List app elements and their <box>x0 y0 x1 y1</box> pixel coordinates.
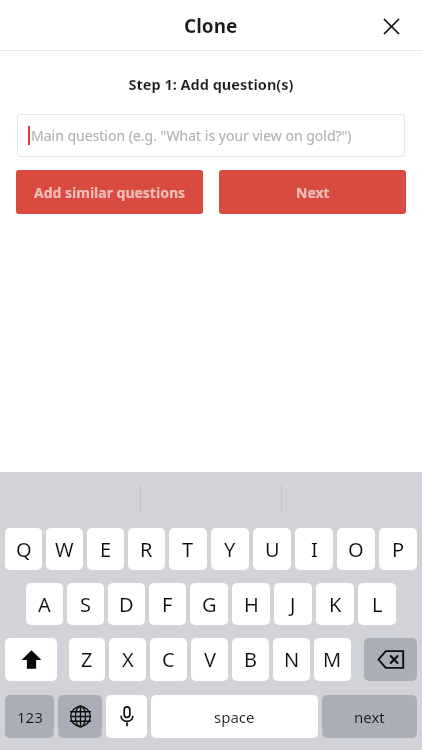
button[interactable]: F <box>149 583 186 625</box>
staticText: Step 1: Add question(s) <box>0 74 422 94</box>
button[interactable]: R <box>128 528 165 570</box>
button[interactable]: C <box>150 638 187 681</box>
staticText: U <box>265 536 280 563</box>
button[interactable]: Change keyboard language <box>58 695 102 738</box>
staticText: 123 <box>17 707 43 727</box>
staticText: P <box>392 536 405 563</box>
staticText: J <box>290 591 296 618</box>
button[interactable]: V <box>191 638 228 681</box>
staticText: B <box>244 646 257 673</box>
staticText: Next <box>296 183 330 202</box>
button[interactable]: U <box>253 528 291 570</box>
staticText: A <box>38 591 51 618</box>
button[interactable]: B <box>232 638 269 681</box>
button[interactable]: W <box>46 528 83 570</box>
button[interactable]: G <box>190 583 228 625</box>
staticText: K <box>329 591 342 618</box>
staticText: Z <box>81 646 93 673</box>
staticText: D <box>119 591 134 618</box>
button[interactable]: Voice input <box>106 695 147 738</box>
button[interactable]: D <box>108 583 145 625</box>
staticText: F <box>162 591 173 618</box>
button[interactable]: Backspace <box>364 638 417 681</box>
staticText: Add similar questions <box>34 183 186 202</box>
button[interactable]: Next <box>219 170 406 214</box>
button[interactable]: Add similar questions <box>16 170 203 214</box>
button[interactable]: space <box>151 695 318 738</box>
button[interactable]: Q <box>5 528 42 570</box>
staticText: T <box>182 536 194 563</box>
button[interactable]: Shift <box>5 638 57 681</box>
button[interactable]: P <box>379 528 417 570</box>
staticText: M <box>323 646 342 673</box>
staticText: H <box>244 591 259 618</box>
staticText: S <box>80 591 91 618</box>
staticText: W <box>55 536 74 563</box>
staticText: E <box>100 536 112 563</box>
button[interactable]: J <box>274 583 312 625</box>
staticText: O <box>348 536 364 563</box>
button[interactable]: next <box>322 695 417 738</box>
staticText: Main question (e.g. "What is your view o… <box>31 126 352 145</box>
staticText: Q <box>16 536 32 563</box>
staticText: G <box>202 591 217 618</box>
staticText: C <box>162 646 175 673</box>
button[interactable]: S <box>67 583 104 625</box>
staticText: X <box>122 646 134 673</box>
button[interactable]: Close <box>374 9 408 43</box>
button[interactable]: M <box>314 638 351 681</box>
staticText: R <box>140 536 153 563</box>
button[interactable]: K <box>316 583 354 625</box>
button[interactable]: L <box>358 583 396 625</box>
button[interactable]: T <box>169 528 207 570</box>
staticText: space <box>214 707 255 727</box>
staticText: Y <box>224 536 236 563</box>
button[interactable]: N <box>273 638 310 681</box>
button[interactable]: Main question (e.g. "What is your view o… <box>17 114 405 157</box>
button[interactable]: H <box>232 583 270 625</box>
button[interactable]: A <box>26 583 63 625</box>
button[interactable]: Y <box>211 528 249 570</box>
button[interactable]: O <box>337 528 375 570</box>
button[interactable]: 123 <box>5 695 54 738</box>
button[interactable]: Z <box>69 638 105 681</box>
staticText: next <box>354 707 385 727</box>
staticText: N <box>284 646 300 673</box>
staticText: Clone <box>184 13 238 39</box>
staticText: L <box>372 591 383 618</box>
staticText: V <box>204 646 216 673</box>
button[interactable]: I <box>295 528 333 570</box>
staticText: I <box>311 536 318 563</box>
button[interactable]: X <box>109 638 146 681</box>
button[interactable]: E <box>87 528 124 570</box>
